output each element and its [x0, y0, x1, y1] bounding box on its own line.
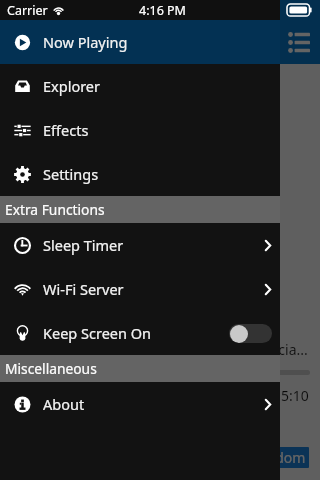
button[interactable]: Explorer: [0, 64, 280, 108]
staticText: Explorer: [43, 76, 101, 96]
button[interactable]: Effects: [0, 108, 280, 152]
button[interactable]: Sleep Timer: [0, 223, 280, 267]
staticText: Keep Screen On: [43, 323, 152, 343]
button[interactable]: Random: [247, 447, 309, 468]
staticText: Nocturne in E-flat Major Op.9 No.2 – Gar…: [14, 340, 308, 359]
staticText: 4:16 PM: [139, 2, 186, 19]
staticText: 5:10: [281, 386, 309, 405]
staticText: Extra Functions: [5, 200, 105, 219]
staticText: Random: [250, 448, 306, 467]
button[interactable]: About: [0, 382, 280, 426]
staticText: Wi-Fi Server: [43, 279, 124, 299]
button[interactable]: Now Playing: [0, 20, 280, 64]
button[interactable]: Wi-Fi Server: [0, 267, 280, 311]
staticText: Sleep Timer: [43, 235, 124, 255]
button[interactable]: Settings: [0, 152, 280, 196]
staticText: Miscellaneous: [5, 359, 97, 378]
staticText: About: [43, 394, 85, 414]
button[interactable]: Play queue: [278, 21, 320, 63]
staticText: Now Playing: [43, 32, 128, 52]
staticText: Settings: [43, 164, 99, 184]
button[interactable]: Keep Screen On: [0, 311, 280, 355]
staticText: Carrier: [7, 2, 48, 19]
staticText: Effects: [43, 120, 89, 140]
staticText: 0:00: [14, 386, 42, 405]
button[interactable]: Keep Screen On toggle: [229, 324, 272, 343]
